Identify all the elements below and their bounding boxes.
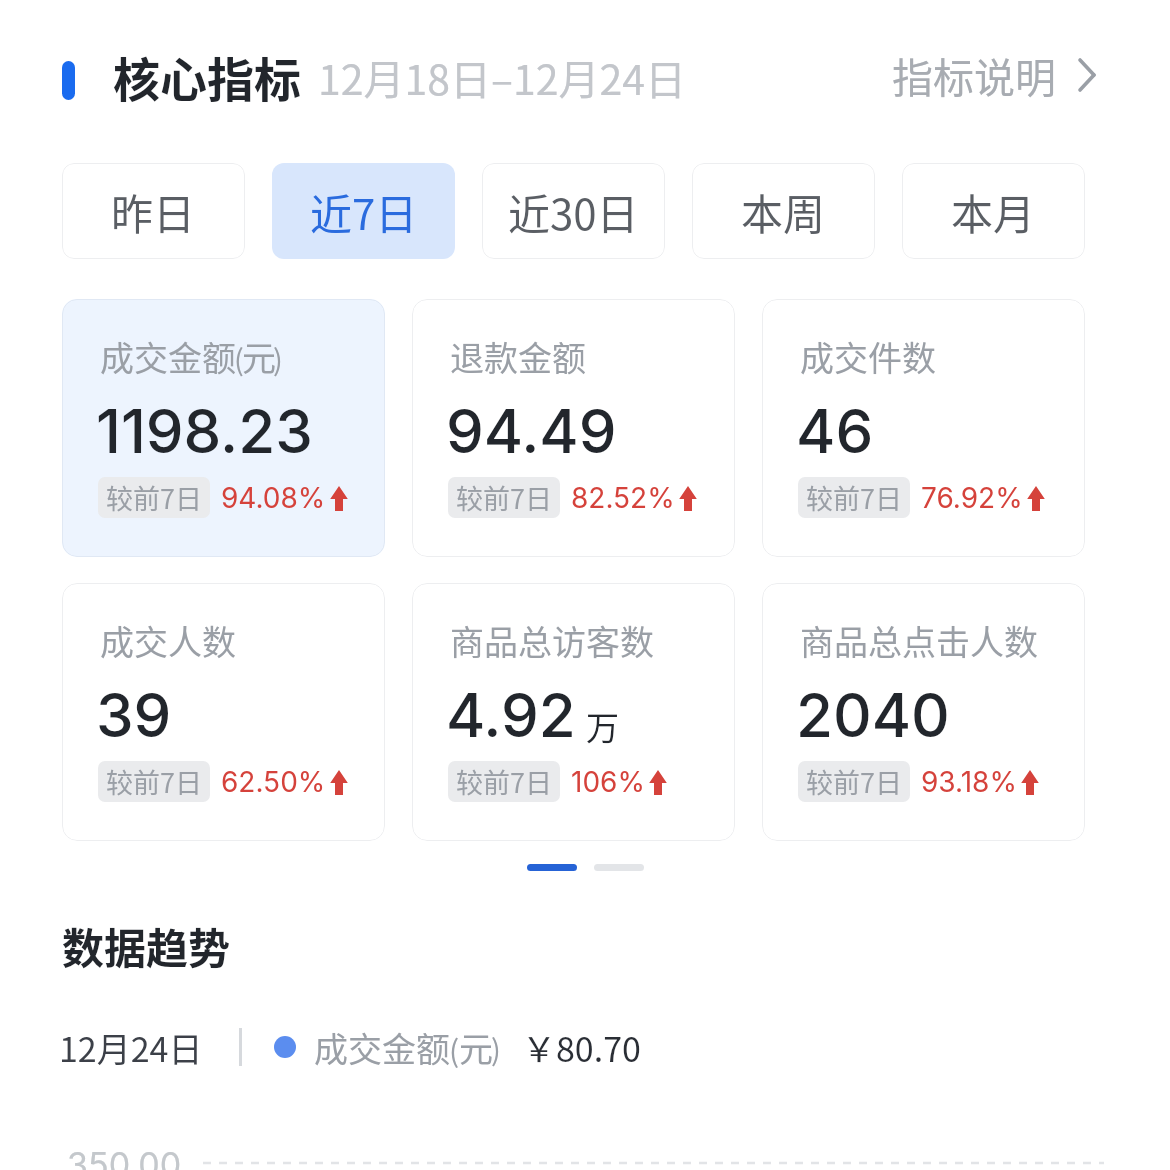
staticText: 39 [96,679,172,752]
staticText: 76.92% [921,481,1023,515]
button[interactable]: 退款金额 [412,299,735,557]
staticText: 12月18日–12月24日 [318,47,687,106]
staticText: 12月24日 [59,1023,203,1071]
staticText: 较前7日 [806,762,902,801]
staticText: 指标说明 [892,45,1056,104]
button[interactable]: 成交人数 [62,583,385,841]
staticText: 1198.23 [96,395,313,468]
button[interactable]: 昨日 [62,163,245,259]
staticText: 商品总点击人数 [800,616,1038,665]
staticText: 较前7日 [456,762,552,801]
staticText: 近30日 [508,181,639,242]
staticText: 较前7日 [456,478,552,517]
staticText: 成交金额 [100,332,236,381]
staticText: ) [273,337,283,379]
button[interactable]: 近7日 [272,163,455,259]
staticText: 近7日 [310,181,418,242]
staticText: 94.49 [446,395,617,468]
staticText: 退款金额 [450,332,586,381]
staticText: 商品总访客数 [450,616,654,665]
staticText: 较前7日 [106,478,202,517]
other: Metric description [1076,55,1100,95]
staticText: 62.50% [221,765,326,799]
button[interactable]: 近30日 [482,163,665,259]
staticText: 成交件数 [800,332,936,381]
staticText: 较前7日 [106,762,202,801]
staticText: 82.52% [571,481,675,515]
staticText: 93.18% [921,765,1017,799]
staticText: ) [491,1027,501,1069]
staticText: 2040 [796,679,950,752]
staticText: 94.08% [221,481,326,515]
staticText: 元 [242,332,276,381]
staticText: 4.92 [446,679,576,752]
staticText: ￥80.70 [522,1023,641,1071]
staticText: 元 [459,1023,493,1071]
staticText: 昨日 [111,181,196,242]
staticText: ( [234,337,244,379]
button[interactable]: 本周 [692,163,875,259]
button[interactable]: 商品总点击人数 [762,583,1085,841]
staticText: 本周 [741,181,826,242]
staticText: 本月 [951,181,1036,242]
staticText: 核心指标 [113,42,301,110]
staticText: 成交金额 [314,1023,450,1071]
button[interactable]: 本月 [902,163,1085,259]
staticText: 万 [586,702,619,750]
staticText: 350.00 [67,1144,182,1170]
staticText: 成交人数 [100,616,236,665]
staticText: 较前7日 [806,478,902,517]
staticText: ( [449,1027,460,1070]
button[interactable]: 指标说明 [892,45,1100,104]
button[interactable]: 成交金额 [62,299,385,557]
staticText: 106% [571,765,645,799]
button[interactable]: 成交件数 [762,299,1085,557]
staticText: 46 [796,395,874,468]
button[interactable]: 商品总访客数 [412,583,735,841]
staticText: 数据趋势 [62,915,231,976]
